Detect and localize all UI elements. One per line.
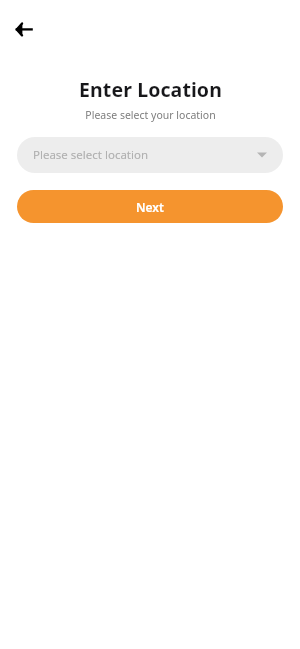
- staticText: Please select your location: [85, 108, 216, 122]
- button[interactable]: Please select location: [17, 137, 283, 173]
- button[interactable]: Back: [8, 13, 40, 45]
- staticText: Next: [136, 199, 164, 215]
- button[interactable]: Next: [17, 190, 283, 223]
- staticText: Please select location: [33, 147, 149, 163]
- staticText: Enter Location: [79, 76, 222, 103]
